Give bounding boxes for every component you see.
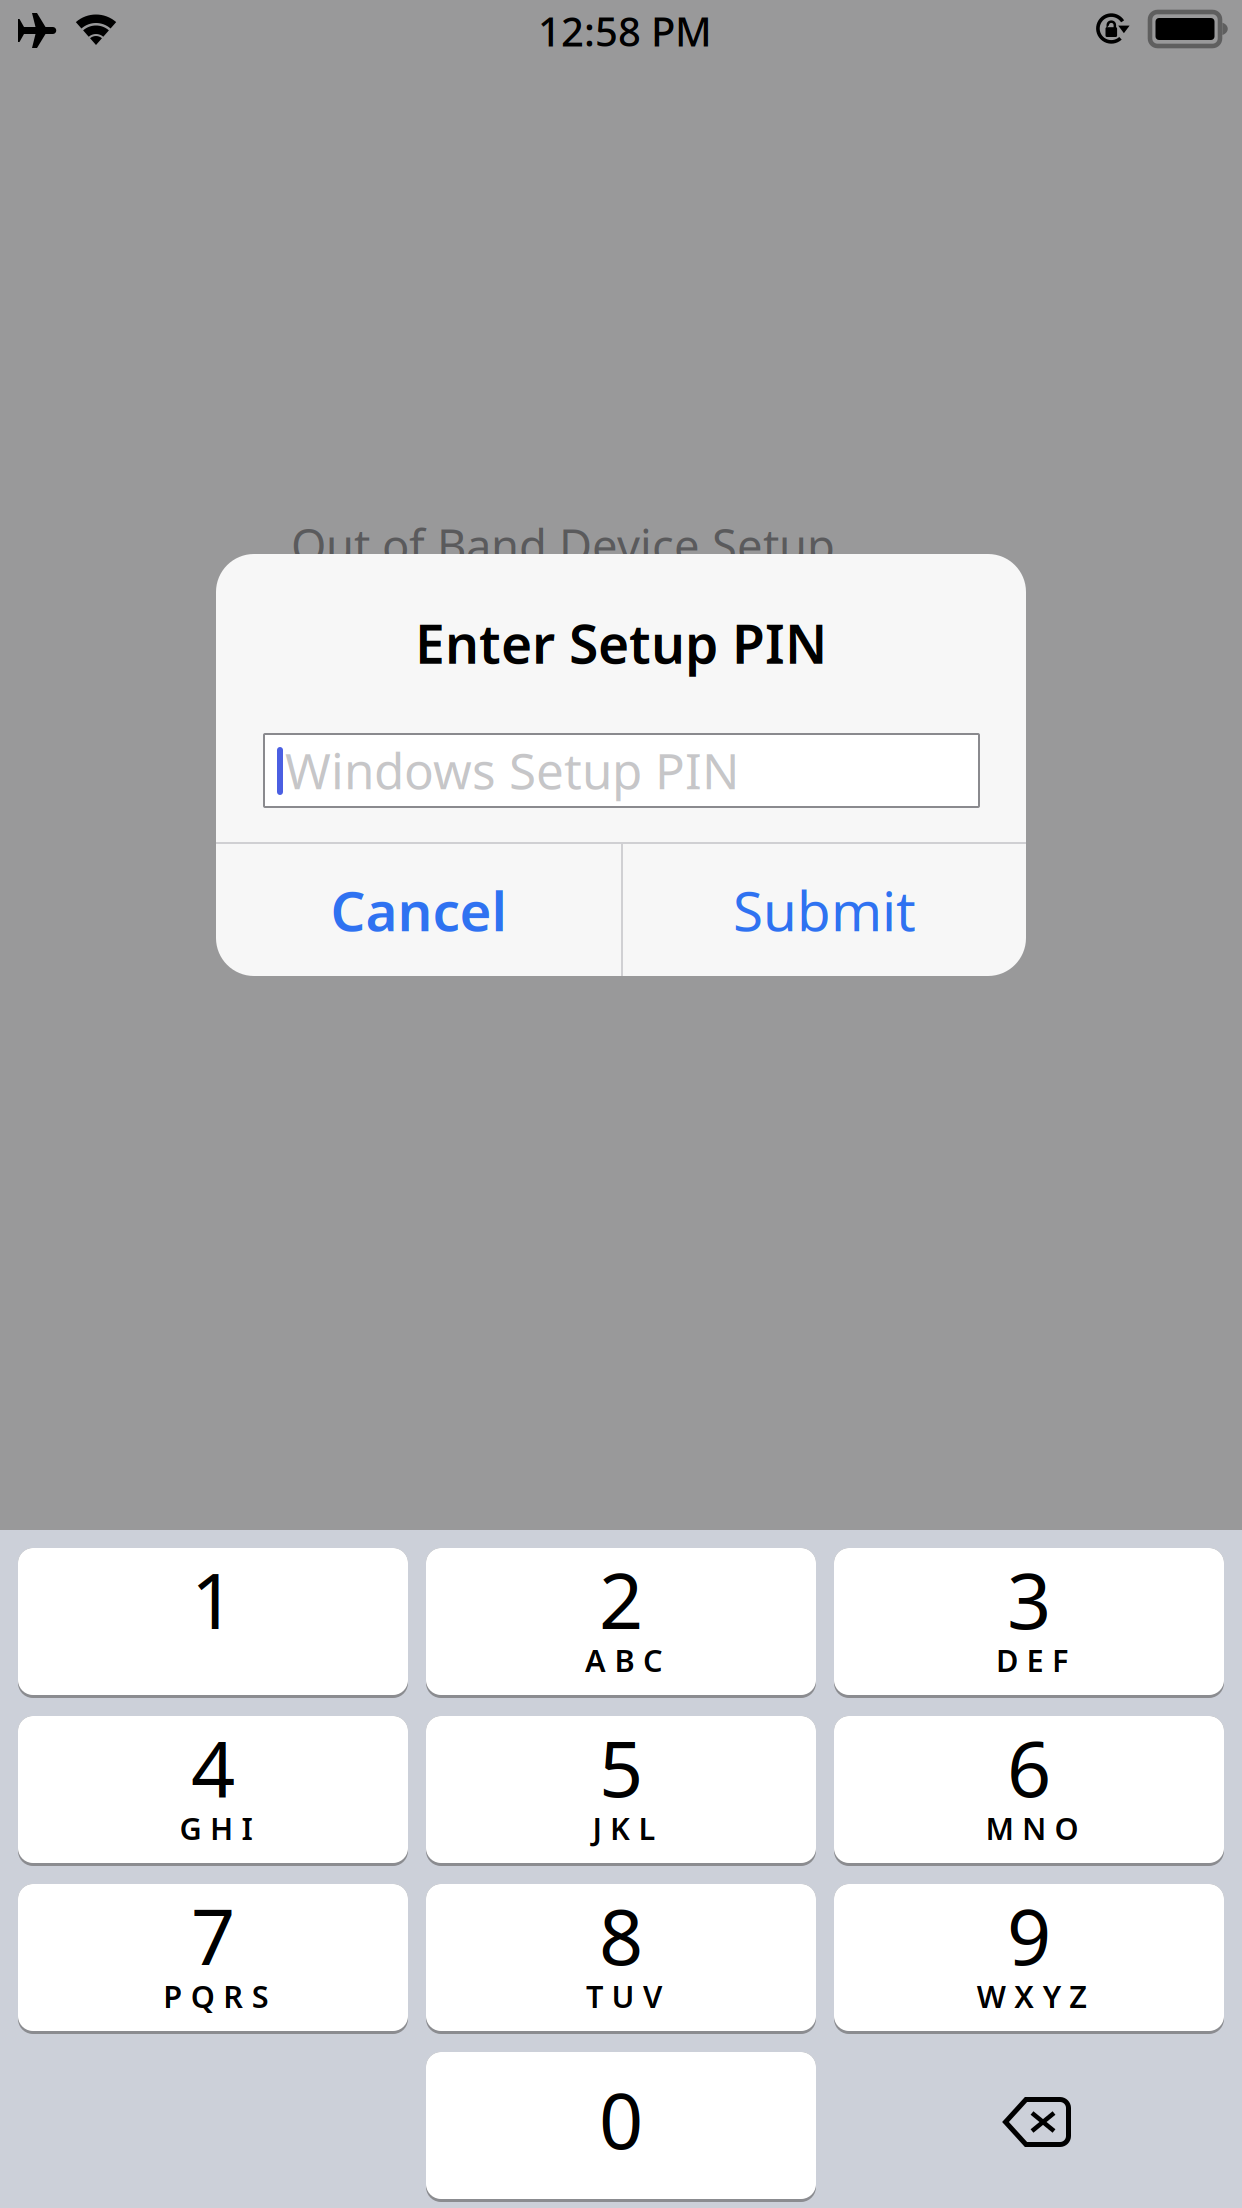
staticText: TUV: [586, 1976, 662, 2016]
button[interactable]: 1: [18, 1548, 408, 1698]
staticText: GHI: [179, 1808, 252, 1848]
button[interactable]: 4: [18, 1716, 408, 1866]
button[interactable]: 7: [18, 1884, 408, 2034]
staticText: 6: [1007, 1716, 1051, 1818]
staticText: PQRS: [163, 1976, 269, 2016]
button[interactable]: 2: [426, 1548, 816, 1698]
button[interactable]: 3: [834, 1548, 1224, 1698]
button[interactable]: 0: [426, 2052, 816, 2202]
staticText: 3: [1007, 1548, 1051, 1650]
staticText: DEF: [996, 1640, 1068, 1680]
staticText: Windows Setup PIN: [285, 737, 739, 803]
staticText: 5: [599, 1716, 643, 1818]
staticText: 1: [191, 1548, 235, 1650]
staticText: JKL: [592, 1808, 655, 1848]
button[interactable]: Submit: [623, 844, 1026, 976]
staticText: ABC: [585, 1640, 663, 1680]
staticText: 4: [191, 1716, 235, 1818]
staticText: Enter Setup PIN: [415, 608, 827, 678]
button[interactable]: 6: [834, 1716, 1224, 1866]
staticText: WXYZ: [977, 1976, 1087, 2016]
staticText: Cancel: [330, 874, 506, 946]
staticText: 7: [191, 1884, 235, 1986]
staticText: 0: [599, 2068, 643, 2170]
button[interactable]: 5: [426, 1716, 816, 1866]
button[interactable]: 9: [834, 1884, 1224, 2034]
staticText: Out of Band Device Setup: [291, 515, 835, 575]
button[interactable]: 8: [426, 1884, 816, 2034]
staticText: Submit: [733, 874, 916, 946]
button[interactable]: Delete: [834, 2052, 1224, 2199]
staticText: MNO: [985, 1808, 1078, 1848]
button[interactable]: Cancel: [216, 844, 621, 976]
staticText: 8: [599, 1884, 643, 1986]
staticText: 2: [599, 1548, 643, 1650]
staticText: 12:58 PM: [538, 4, 712, 57]
staticText: 9: [1007, 1884, 1051, 1986]
